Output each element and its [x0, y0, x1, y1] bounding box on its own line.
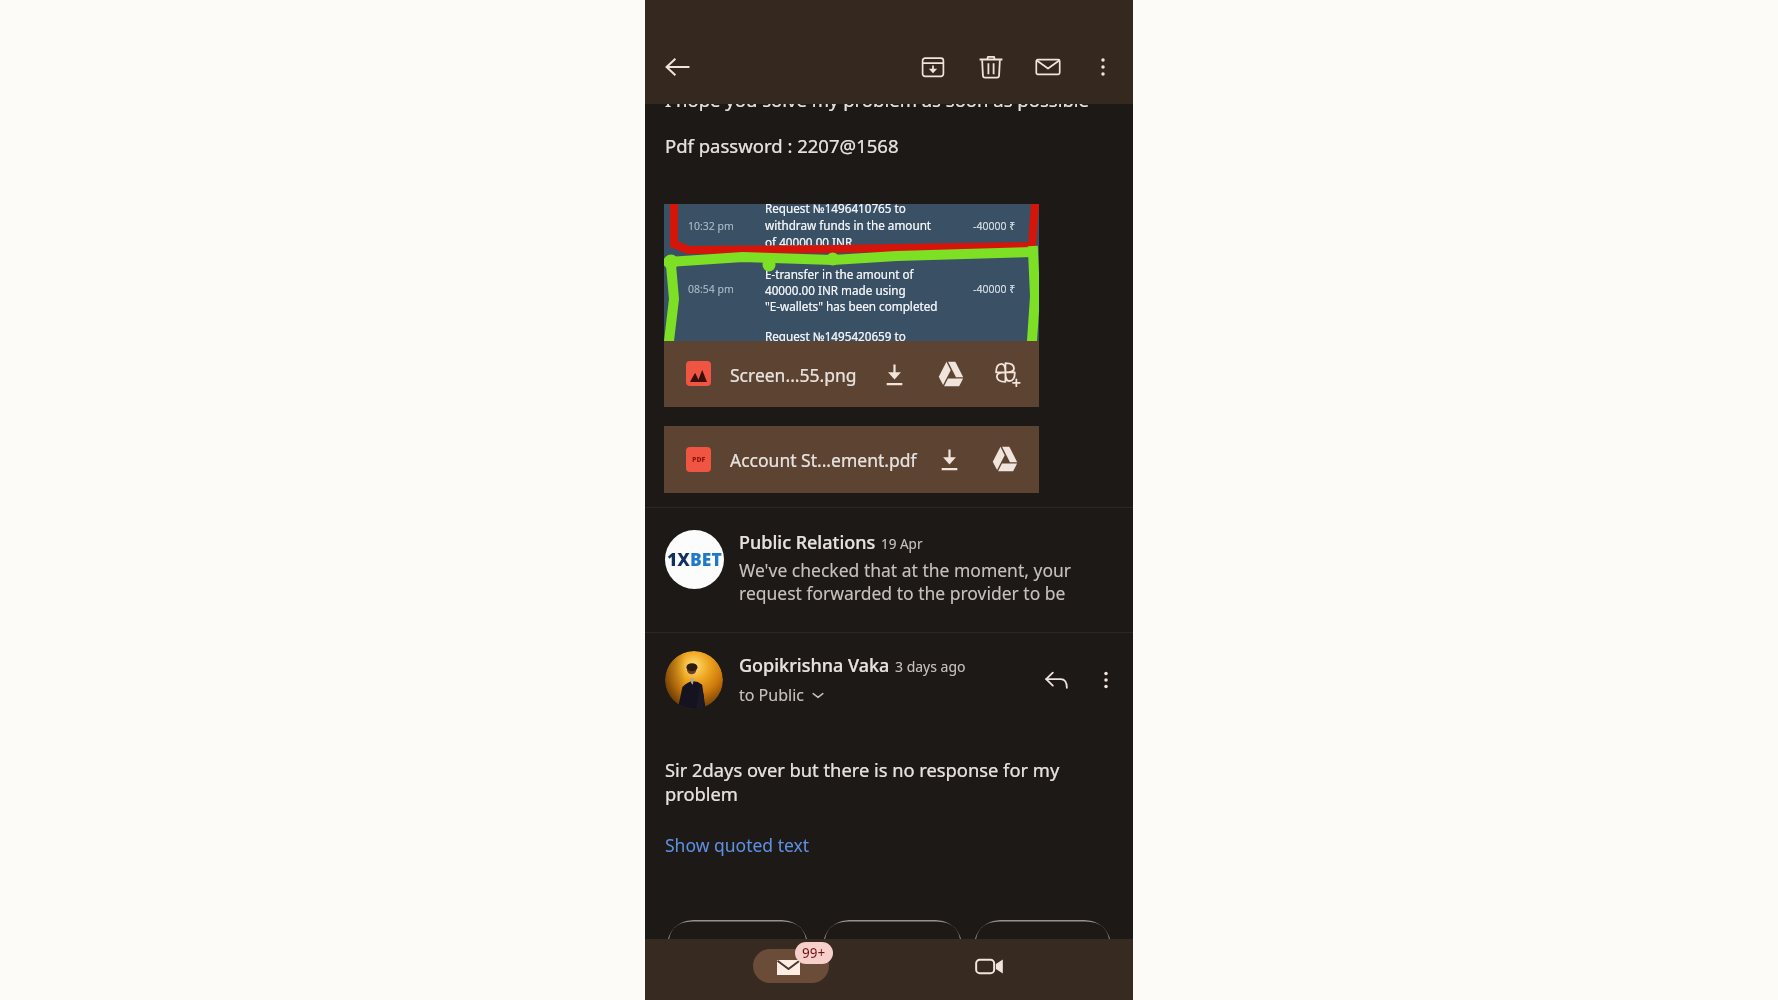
button[interactable]: Mark as unread: [1025, 44, 1071, 90]
button[interactable]: Save to Photos: [986, 353, 1028, 395]
staticText: 08:54 pm: [688, 282, 734, 296]
staticText: Request №1495420659 to: [765, 328, 906, 341]
staticText: Pdf password : 2207@1568: [665, 133, 899, 158]
button[interactable]: Forward: [974, 920, 1111, 960]
staticText: Show quoted text: [665, 833, 810, 857]
button[interactable]: Save to Drive: [984, 438, 1026, 480]
button[interactable]: Meet: [951, 949, 1027, 983]
button[interactable]: More options: [1080, 44, 1126, 90]
staticText: BET: [690, 547, 722, 571]
staticText: Sir 2days over but there is no response …: [665, 757, 1060, 807]
button[interactable]: Screen...55.png: [664, 341, 1039, 407]
staticText: 1X: [667, 547, 690, 571]
button[interactable]: Mail: [753, 949, 829, 983]
staticText: to Public: [739, 684, 804, 706]
button[interactable]: 1X: [645, 507, 1133, 632]
staticText: 40000.00 INR made using: [765, 282, 906, 298]
staticText: We've checked that at the moment, your r…: [739, 558, 1072, 606]
button[interactable]: Delete: [968, 44, 1014, 90]
button[interactable]: Show quoted text: [665, 833, 810, 857]
staticText: "E-wallets" has been completed: [765, 298, 938, 314]
button[interactable]: Reply all: [823, 920, 962, 960]
staticText: I hope you solve my problem as soon as p…: [665, 87, 1089, 112]
staticText: -40000 ₹: [973, 219, 1016, 233]
button[interactable]: Navigate up: [655, 44, 701, 90]
staticText: Account St...ement.pdf: [730, 448, 917, 472]
staticText: withdraw funds in the amount: [765, 217, 932, 233]
staticText: E-transfer in the amount of: [765, 266, 914, 282]
staticText: 99+: [802, 944, 826, 962]
staticText: 3 days ago: [895, 657, 966, 676]
staticText: of 40000.00 INR: [765, 234, 853, 250]
staticText: PDF: [692, 455, 706, 465]
button[interactable]: Download: [873, 353, 915, 395]
staticText: 10:32 pm: [688, 219, 734, 233]
staticText: -40000 ₹: [973, 282, 1016, 296]
button[interactable]: Reply: [667, 920, 808, 960]
button[interactable]: More options: [1085, 659, 1127, 701]
button[interactable]: Archive: [910, 44, 956, 90]
staticText: 19 Apr: [881, 535, 923, 553]
button[interactable]: Save to Drive: [930, 353, 972, 395]
staticText: Request №1496410765 to: [765, 204, 906, 216]
button[interactable]: Reply: [1035, 659, 1077, 701]
button[interactable]: PDF: [664, 426, 1039, 493]
button[interactable]: to Public: [739, 684, 824, 706]
staticText: Gopikrishna Vaka: [739, 653, 890, 678]
button[interactable]: Download: [928, 438, 970, 480]
staticText: Screen...55.png: [730, 363, 857, 387]
staticText: Public Relations: [739, 530, 876, 555]
